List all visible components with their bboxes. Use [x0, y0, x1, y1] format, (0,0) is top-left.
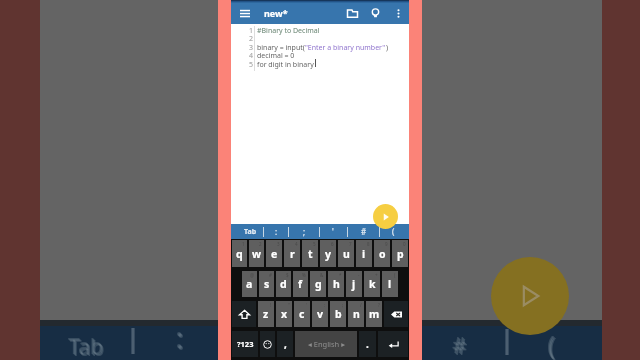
staticText: (: [392, 226, 395, 237]
staticText: 8: [367, 241, 370, 247]
button[interactable]: Shift: [232, 301, 256, 327]
staticText: binary = input(: [257, 43, 305, 53]
button[interactable]: Emoji: [260, 331, 275, 357]
staticText: %: [302, 272, 306, 278]
button[interactable]: Enter: [378, 331, 408, 357]
button[interactable]: %: [293, 271, 308, 297]
button[interactable]: +: [364, 271, 380, 297]
staticText: Tab: [69, 333, 104, 360]
staticText: /: [360, 302, 362, 308]
staticText: #: [453, 332, 467, 360]
staticText: 4: [249, 51, 254, 61]
staticText: j: [352, 277, 356, 291]
staticText: @: [250, 272, 255, 278]
button[interactable]: 3: [266, 240, 282, 267]
staticText: ": [288, 302, 290, 308]
button[interactable]: Run: [373, 204, 398, 229]
staticText: k: [369, 277, 376, 291]
button[interactable]: :: [269, 224, 283, 239]
button[interactable]: Symbols: [232, 331, 258, 357]
button[interactable]: ': [294, 301, 310, 327]
staticText: s: [264, 277, 270, 291]
button[interactable]: $: [276, 271, 291, 297]
staticText: q: [236, 247, 243, 261]
staticText: d: [280, 277, 287, 291]
staticText: (: [394, 272, 396, 278]
staticText: new*: [264, 7, 288, 19]
staticText: 3: [249, 43, 254, 53]
staticText: v: [317, 307, 323, 321]
button[interactable]: Hints: [366, 4, 384, 22]
staticText: .: [366, 337, 369, 351]
staticText: n: [353, 307, 360, 321]
staticText: "Enter a binary number": [305, 43, 386, 53]
button[interactable]: ;: [330, 301, 346, 327]
staticText: c: [299, 307, 305, 321]
button[interactable]: Delete: [384, 301, 408, 327]
staticText: a: [246, 277, 253, 291]
button[interactable]: 2: [249, 240, 264, 267]
staticText: ◂ English ▸: [308, 339, 345, 349]
staticText: 5: [313, 241, 316, 247]
staticText: #Binary to Decimal: [257, 26, 320, 36]
staticText: z: [263, 307, 269, 321]
button[interactable]: &: [310, 271, 326, 297]
staticText: 2: [249, 34, 254, 44]
button[interactable]: 5: [302, 240, 318, 267]
button[interactable]: !: [258, 301, 274, 327]
button[interactable]: ,: [277, 331, 293, 357]
button[interactable]: #: [259, 271, 274, 297]
button[interactable]: (: [382, 271, 398, 297]
staticText: (: [549, 328, 557, 360]
button[interactable]: 7: [338, 240, 354, 267]
button[interactable]: 9: [374, 240, 390, 267]
staticText: 2: [259, 241, 262, 247]
button[interactable]: ': [326, 224, 340, 239]
staticText: 3: [277, 241, 280, 247]
button[interactable]: *: [328, 271, 344, 297]
button[interactable]: 0: [392, 240, 408, 267]
button[interactable]: 4: [284, 240, 300, 267]
staticText: f: [298, 277, 303, 291]
staticText: o: [379, 247, 386, 261]
staticText: b: [335, 307, 342, 321]
staticText: l: [388, 277, 392, 291]
button[interactable]: #: [357, 224, 371, 239]
staticText: u: [343, 247, 350, 261]
staticText: 5: [249, 60, 254, 70]
staticText: y: [325, 247, 331, 261]
staticText: +: [375, 272, 378, 278]
button[interactable]: More options: [389, 4, 407, 22]
staticText: 9: [385, 241, 388, 247]
button[interactable]: Tab: [237, 224, 263, 239]
button[interactable]: 6: [320, 240, 336, 267]
button[interactable]: (: [386, 224, 400, 239]
button[interactable]: -: [346, 271, 362, 297]
button[interactable]: /: [348, 301, 364, 327]
button[interactable]: ;: [297, 224, 311, 239]
button[interactable]: :: [312, 301, 328, 327]
staticText: for digit in binary: [257, 60, 314, 70]
staticText: Tab: [70, 334, 105, 360]
button[interactable]: 8: [356, 240, 372, 267]
staticText: (: [547, 326, 555, 360]
button[interactable]: ?: [366, 301, 382, 327]
button[interactable]: Navigation menu: [237, 5, 253, 21]
button[interactable]: ": [276, 301, 292, 327]
button[interactable]: Space: [295, 331, 357, 357]
staticText: #: [454, 333, 468, 360]
button[interactable]: 1: [232, 240, 247, 267]
button[interactable]: Code editor: [231, 24, 409, 224]
button[interactable]: @: [242, 271, 257, 297]
staticText: $: [286, 272, 289, 278]
staticText: decimal = 0: [257, 51, 295, 61]
staticText: ?123: [237, 339, 254, 349]
button[interactable]: .: [359, 331, 376, 357]
button[interactable]: Open file: [343, 4, 361, 22]
staticText: t: [308, 247, 313, 261]
staticText: ): [386, 43, 389, 53]
